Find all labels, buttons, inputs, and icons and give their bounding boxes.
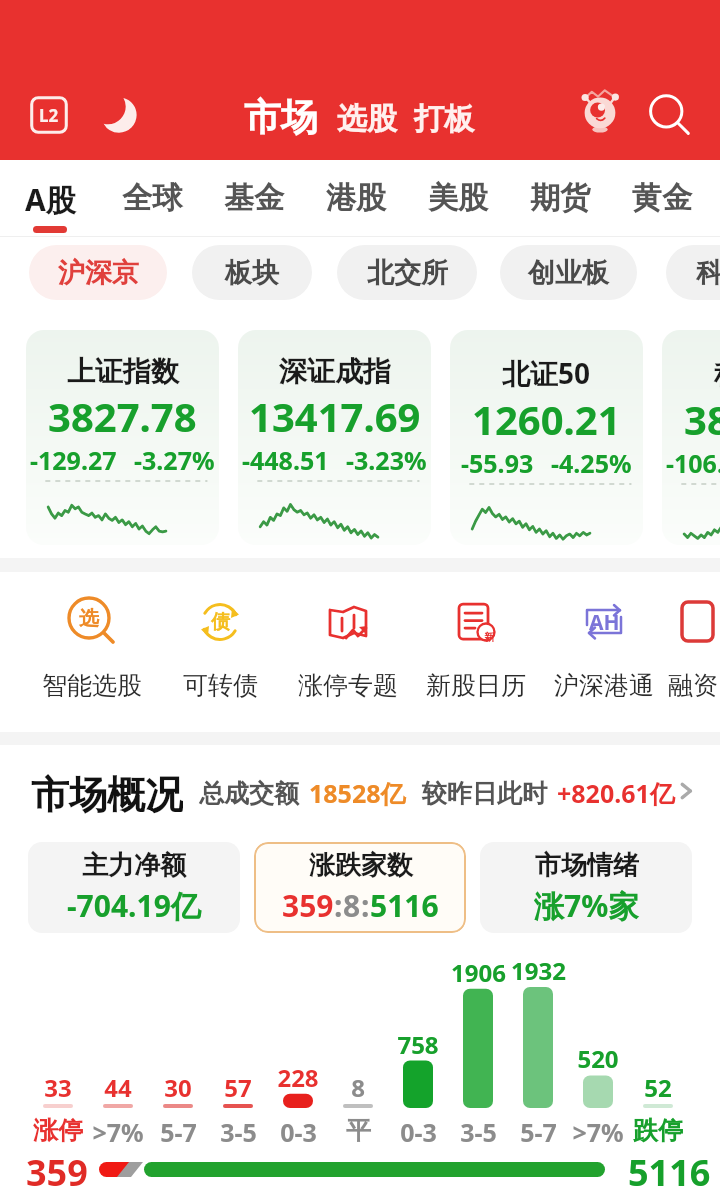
button[interactable]: 市场情绪 bbox=[480, 842, 692, 933]
staticText: 北证50 bbox=[502, 354, 591, 392]
button[interactable]: 美股 bbox=[409, 160, 507, 236]
button[interactable]: Night mode bbox=[94, 90, 144, 140]
button[interactable]: 深证成指 bbox=[238, 330, 431, 545]
staticText: 359 bbox=[282, 885, 334, 926]
staticText: -3.27% bbox=[134, 443, 215, 477]
button[interactable]: 沪深京 bbox=[29, 245, 167, 300]
button[interactable]: 涨跌家数 bbox=[254, 842, 466, 933]
button[interactable]: 全球 bbox=[103, 160, 201, 236]
staticText: 1906 bbox=[451, 956, 506, 989]
staticText: +820.61亿 bbox=[557, 776, 675, 810]
button[interactable]: 新 bbox=[412, 572, 540, 701]
staticText: -106.38 bbox=[666, 446, 720, 480]
staticText: 359 bbox=[26, 1148, 88, 1197]
staticText: 3814.26 bbox=[684, 392, 720, 446]
staticText: 44 bbox=[104, 1071, 132, 1104]
button[interactable]: 期货 bbox=[511, 160, 609, 236]
staticText: 33 bbox=[44, 1071, 72, 1104]
staticText: 3827.78 bbox=[48, 389, 197, 443]
button[interactable]: 涨停专题 bbox=[284, 572, 412, 701]
button[interactable]: 上证指数 bbox=[26, 330, 219, 545]
button[interactable]: AH bbox=[540, 572, 668, 701]
staticText: 美股 bbox=[428, 179, 488, 217]
button[interactable]: 科创板 bbox=[666, 245, 720, 300]
staticText: : bbox=[334, 885, 343, 926]
staticText: 上证指数 bbox=[67, 354, 179, 389]
staticText: -4.25% bbox=[551, 446, 632, 480]
staticText: 平 bbox=[346, 1115, 371, 1146]
staticText: 52 bbox=[644, 1071, 672, 1104]
staticText: L2 bbox=[39, 104, 59, 127]
staticText: 涨7%家 bbox=[534, 885, 639, 926]
staticText: >7% bbox=[92, 1115, 144, 1149]
button[interactable]: 港股 bbox=[307, 160, 405, 236]
staticText: 打板 bbox=[414, 100, 474, 138]
staticText: 基金 bbox=[224, 179, 284, 217]
staticText: 3-5 bbox=[460, 1115, 497, 1149]
staticText: 港股 bbox=[326, 179, 386, 217]
staticText: -129.27 bbox=[30, 443, 117, 477]
staticText: 较昨日此时 bbox=[422, 778, 547, 809]
staticText: 5-7 bbox=[160, 1115, 197, 1149]
button[interactable]: 主力净额 bbox=[28, 842, 240, 933]
button[interactable]: 黄金 bbox=[613, 160, 711, 236]
button[interactable]: AI assistant bbox=[570, 82, 630, 142]
button[interactable]: 选股 bbox=[337, 100, 397, 138]
button[interactable]: 市场 bbox=[244, 94, 318, 141]
staticText: -704.19亿 bbox=[67, 885, 201, 926]
staticText: 黄金 bbox=[632, 179, 692, 217]
staticText: 可转债 bbox=[183, 670, 258, 701]
staticText: 沪深港通 bbox=[554, 670, 654, 701]
button[interactable]: 科创50 bbox=[662, 330, 720, 545]
staticText: 智能选股 bbox=[42, 670, 142, 701]
staticText: -448.51 bbox=[242, 443, 329, 477]
button[interactable]: L2 quotes bbox=[26, 92, 72, 138]
staticText: 跌停 bbox=[633, 1115, 683, 1146]
staticText: 57 bbox=[224, 1071, 252, 1104]
staticText: 758 bbox=[397, 1028, 439, 1061]
staticText: 30 bbox=[164, 1071, 192, 1104]
staticText: 深证成指 bbox=[279, 354, 391, 389]
staticText: 选 bbox=[79, 606, 99, 631]
button[interactable]: 基金 bbox=[205, 160, 303, 236]
button[interactable]: 创业板 bbox=[500, 245, 637, 300]
staticText: 新股日历 bbox=[426, 670, 526, 701]
staticText: 520 bbox=[577, 1042, 619, 1075]
staticText: 1260.21 bbox=[472, 392, 621, 446]
button[interactable]: 北证50 bbox=[450, 330, 643, 545]
button[interactable]: 北交所 bbox=[337, 245, 477, 300]
staticText: 板块 bbox=[225, 256, 279, 290]
staticText: AH bbox=[589, 608, 620, 637]
button[interactable]: 板块 bbox=[192, 245, 312, 300]
button[interactable]: 选 bbox=[28, 572, 156, 701]
staticText: 18528亿 bbox=[309, 776, 406, 810]
staticText: 228 bbox=[277, 1061, 319, 1094]
button[interactable]: A股 bbox=[1, 160, 99, 236]
staticText: 5-7 bbox=[520, 1115, 557, 1149]
staticText: 全球 bbox=[122, 179, 182, 217]
staticText: 北交所 bbox=[367, 256, 448, 290]
staticText: >7% bbox=[572, 1115, 624, 1149]
staticText: : bbox=[361, 885, 370, 926]
button[interactable]: Search bbox=[642, 88, 696, 142]
staticText: 5116 bbox=[628, 1148, 711, 1197]
staticText: 0-3 bbox=[280, 1115, 317, 1149]
button[interactable]: 融资融券 bbox=[668, 572, 720, 701]
staticText: 期货 bbox=[530, 179, 590, 217]
staticText: 科创板 bbox=[696, 256, 720, 290]
button[interactable]: 市场概况 bbox=[31, 771, 697, 815]
button[interactable]: 打板 bbox=[414, 100, 474, 138]
staticText: A股 bbox=[25, 179, 76, 220]
staticText: 市场情绪 bbox=[535, 849, 639, 882]
staticText: 选股 bbox=[337, 100, 397, 138]
staticText: 沪深京 bbox=[58, 256, 139, 290]
staticText: 8 bbox=[343, 885, 361, 926]
staticText: 涨停专题 bbox=[298, 670, 398, 701]
staticText: 市场概况 bbox=[31, 771, 183, 815]
staticText: 8 bbox=[351, 1071, 365, 1104]
button[interactable]: 债 bbox=[156, 572, 284, 701]
staticText: 主力净额 bbox=[82, 849, 186, 882]
staticText: 5116 bbox=[370, 885, 439, 926]
staticText: 市场 bbox=[244, 94, 318, 141]
staticText: 债 bbox=[211, 610, 230, 634]
